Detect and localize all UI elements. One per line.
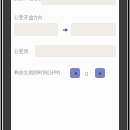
button[interactable]: Increase <box>95 68 105 78</box>
button[interactable]: Decrease <box>70 68 80 78</box>
staticText: 剩余交易的时间(分钟) <box>14 69 61 76</box>
staticText: 交易市场名称 <box>14 0 43 1</box>
staticText: 公受局 <box>14 48 29 54</box>
staticText: 0 <box>85 70 89 78</box>
staticText: 公受开放方向 <box>14 14 43 20</box>
